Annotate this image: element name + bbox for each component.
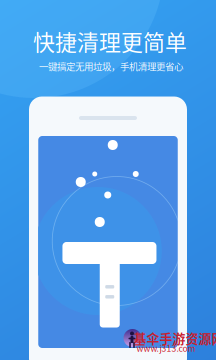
staticText: 快捷清理更简单: [33, 25, 187, 57]
staticText: www.j313.com: [136, 342, 195, 354]
staticText: 一键搞定无用垃圾，手机清理更省心: [39, 59, 183, 73]
staticText: 基伞手游资源网: [133, 329, 216, 347]
